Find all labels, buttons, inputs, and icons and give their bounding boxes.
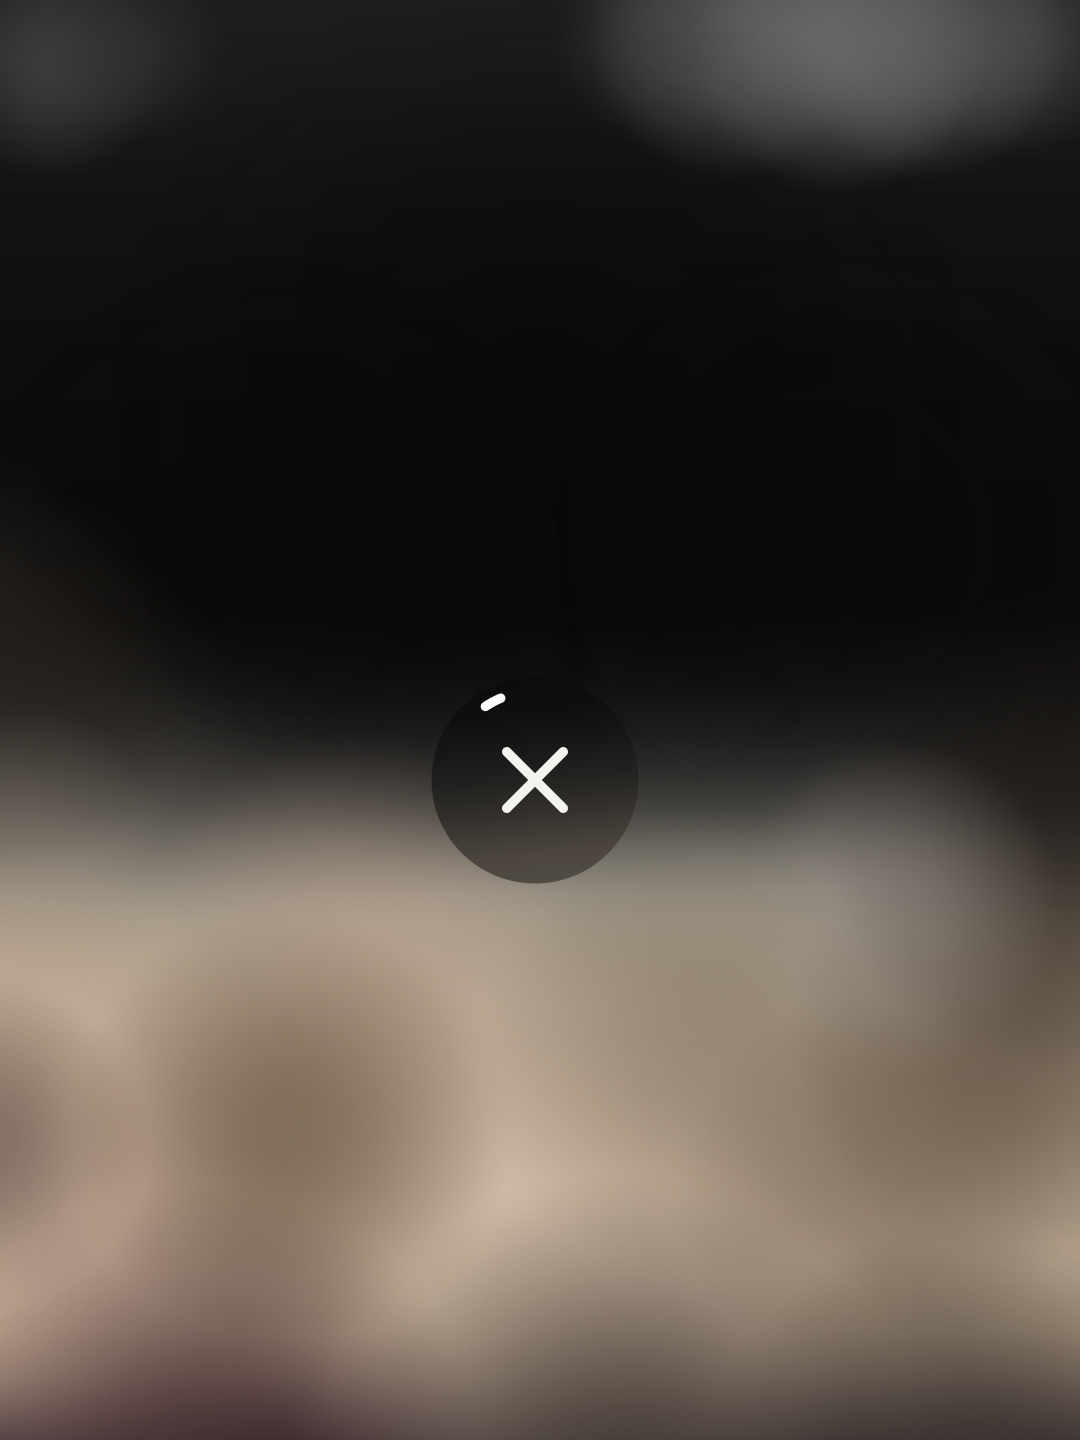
button[interactable]: Cancel (431, 676, 638, 883)
